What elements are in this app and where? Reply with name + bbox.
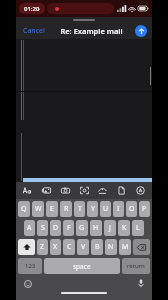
button[interactable]: B	[91, 239, 103, 255]
button[interactable]: M	[119, 239, 131, 255]
staticText: 123	[25, 262, 36, 270]
staticText: L	[136, 223, 140, 233]
staticText: Cancel	[23, 26, 45, 36]
staticText: T	[78, 204, 82, 214]
staticText: A	[27, 223, 32, 233]
staticText: O	[129, 204, 135, 214]
staticText: V	[81, 242, 86, 252]
button[interactable]: Markup	[95, 183, 110, 198]
staticText: W	[35, 204, 42, 214]
button[interactable]: return	[122, 258, 150, 274]
staticText: C	[67, 242, 72, 252]
button[interactable]: E	[46, 201, 58, 217]
button[interactable]: L	[132, 220, 144, 236]
button[interactable]: Take photo	[58, 183, 73, 198]
button[interactable]: U	[100, 201, 111, 217]
button[interactable]: V	[77, 239, 89, 255]
button[interactable]: Attach file	[114, 183, 129, 198]
button[interactable]: Text format	[20, 183, 35, 198]
button[interactable]: R	[60, 201, 72, 217]
staticText: P	[142, 204, 147, 214]
button[interactable]: Backspace	[133, 239, 150, 255]
staticText: U	[103, 204, 109, 214]
button[interactable]: F	[63, 220, 74, 236]
staticText: S	[41, 223, 45, 233]
button[interactable]: Send	[135, 25, 147, 37]
button[interactable]: Photo library	[39, 183, 54, 198]
button[interactable]: N	[105, 239, 117, 255]
staticText: Q	[21, 204, 27, 214]
staticText: B	[95, 242, 100, 252]
button[interactable]: S	[37, 220, 48, 236]
staticText: N	[108, 242, 114, 252]
button[interactable]: T	[74, 201, 85, 217]
staticText: Y	[91, 204, 95, 214]
staticText: Re: Example mail	[60, 26, 123, 36]
button[interactable]: K	[118, 220, 130, 236]
staticText: I	[117, 204, 120, 214]
staticText: F	[67, 223, 71, 233]
button[interactable]: W	[32, 201, 44, 217]
staticText: R	[64, 204, 69, 214]
staticText: space	[73, 262, 91, 271]
staticText: M	[122, 242, 129, 252]
staticText: G	[79, 223, 85, 233]
button[interactable]: C	[63, 239, 75, 255]
staticText: D	[53, 223, 59, 233]
button[interactable]: More	[133, 183, 148, 198]
button[interactable]: Cancel	[21, 24, 47, 38]
staticText: K	[122, 223, 127, 233]
staticText: return	[127, 262, 145, 270]
button[interactable]: O	[126, 201, 137, 217]
button[interactable]: D	[50, 220, 61, 236]
button[interactable]: Shift	[18, 239, 35, 255]
button[interactable]: P	[139, 201, 150, 217]
button[interactable]: Z	[37, 239, 48, 255]
button[interactable]: Q	[18, 201, 30, 217]
button[interactable]	[16, 39, 152, 182]
staticText: 01:20	[24, 5, 40, 13]
staticText: X	[53, 242, 58, 252]
button[interactable]: I	[113, 201, 124, 217]
button[interactable]: 123	[18, 258, 42, 274]
staticText: H	[93, 223, 99, 233]
button[interactable]: Emoji	[22, 278, 33, 289]
button[interactable]: A	[24, 220, 35, 236]
staticText: J	[109, 223, 111, 233]
button[interactable]: H	[90, 220, 102, 236]
button[interactable]: X	[50, 239, 61, 255]
button[interactable]: J	[104, 220, 116, 236]
button[interactable]: space	[44, 258, 120, 274]
button[interactable]: Y	[87, 201, 98, 217]
button[interactable]: Scan document	[77, 183, 92, 198]
staticText: Z	[40, 242, 45, 252]
button[interactable]: Dictate	[135, 278, 146, 289]
staticText: E	[50, 204, 54, 214]
button[interactable]: G	[76, 220, 88, 236]
